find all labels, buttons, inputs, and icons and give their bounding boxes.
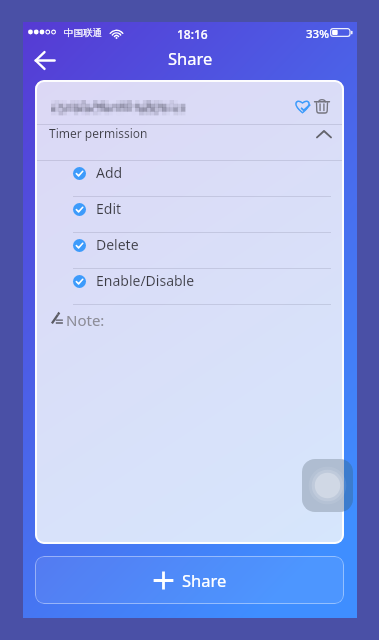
staticText: Note: — [66, 310, 105, 330]
button[interactable]: Timer permission — [35, 124, 344, 160]
button[interactable]: Share — [35, 556, 344, 604]
staticText: Edit — [96, 199, 122, 218]
button[interactable]: Favorite — [293, 97, 312, 116]
staticText: Delete — [96, 235, 139, 254]
staticText: Enable/Disable — [96, 271, 195, 290]
button[interactable]: Delete — [312, 96, 332, 116]
staticText: 33% — [306, 26, 329, 42]
button[interactable]: Enable/Disable — [35, 268, 344, 304]
staticText: Add — [96, 163, 123, 182]
staticText: Share — [168, 47, 213, 69]
button[interactable]: Assistive touch — [302, 459, 353, 512]
staticText: Share — [182, 569, 227, 591]
button[interactable]: Delete — [35, 232, 344, 268]
button[interactable]: Edit — [35, 196, 344, 232]
staticText: 中国联通 — [64, 27, 102, 39]
button[interactable]: Add — [35, 160, 344, 196]
staticText: Timer permission — [49, 125, 148, 141]
button[interactable]: Back — [30, 46, 58, 74]
staticText: 18:16 — [177, 26, 208, 42]
